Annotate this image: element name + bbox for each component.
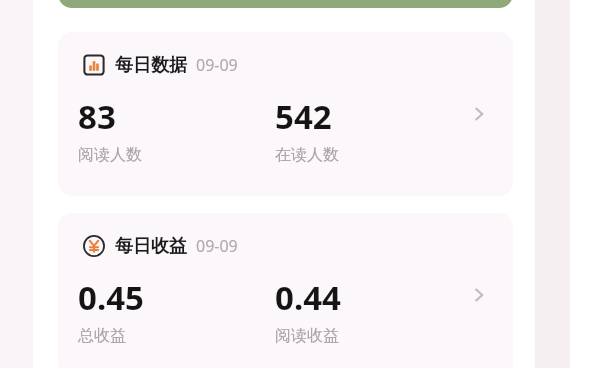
button[interactable]: 每日收益 — [58, 213, 513, 368]
staticText: 每日收益 — [115, 235, 187, 258]
button[interactable]: 查看详情 — [463, 279, 495, 311]
staticText: 阅读人数 — [78, 145, 142, 165]
staticText: 总收益 — [78, 326, 126, 346]
staticText: 0.45 — [78, 275, 144, 320]
staticText: 0.44 — [275, 275, 341, 320]
staticText: 阅读收益 — [275, 326, 339, 346]
button[interactable]: 每日数据 — [58, 32, 513, 196]
staticText: 09-09 — [196, 54, 238, 76]
staticText: 83 — [78, 94, 116, 139]
staticText: 09-09 — [196, 235, 238, 257]
staticText: 在读人数 — [275, 145, 339, 165]
staticText: 542 — [275, 94, 332, 139]
button[interactable]: 查看详情 — [463, 98, 495, 130]
staticText: 每日数据 — [115, 54, 187, 77]
